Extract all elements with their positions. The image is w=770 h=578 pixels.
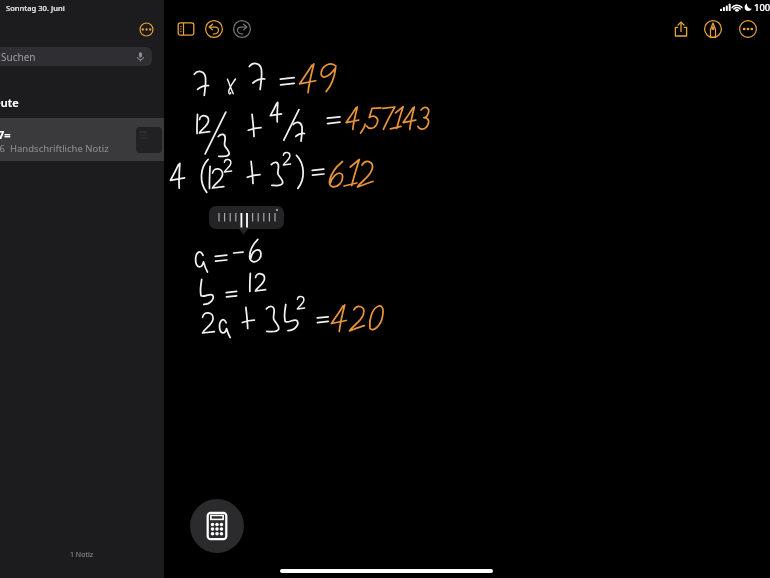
staticText: Sonntag 30. Juni (6, 3, 65, 13)
button[interactable]: Redo (232, 19, 252, 39)
button[interactable]: More options (738, 19, 758, 39)
button[interactable]: Calculator (190, 499, 244, 553)
staticText: 100 % (754, 1, 770, 14)
button[interactable]: Markup (703, 19, 723, 39)
button[interactable]: Share (671, 19, 691, 39)
staticText: 1 Notiz (70, 550, 94, 560)
button[interactable]: 7= (0, 118, 164, 161)
button[interactable]: Suchen (0, 47, 152, 66)
staticText: 7= (0, 127, 11, 142)
staticText: Suchen (1, 50, 36, 64)
staticText: Heute (0, 95, 19, 110)
button[interactable]: Undo (204, 19, 224, 39)
staticText: Handschriftliche Notiz (10, 142, 109, 155)
button[interactable]: Toggle sidebar (176, 19, 196, 39)
staticText: 06 (0, 142, 5, 155)
button[interactable]: More (139, 22, 154, 37)
